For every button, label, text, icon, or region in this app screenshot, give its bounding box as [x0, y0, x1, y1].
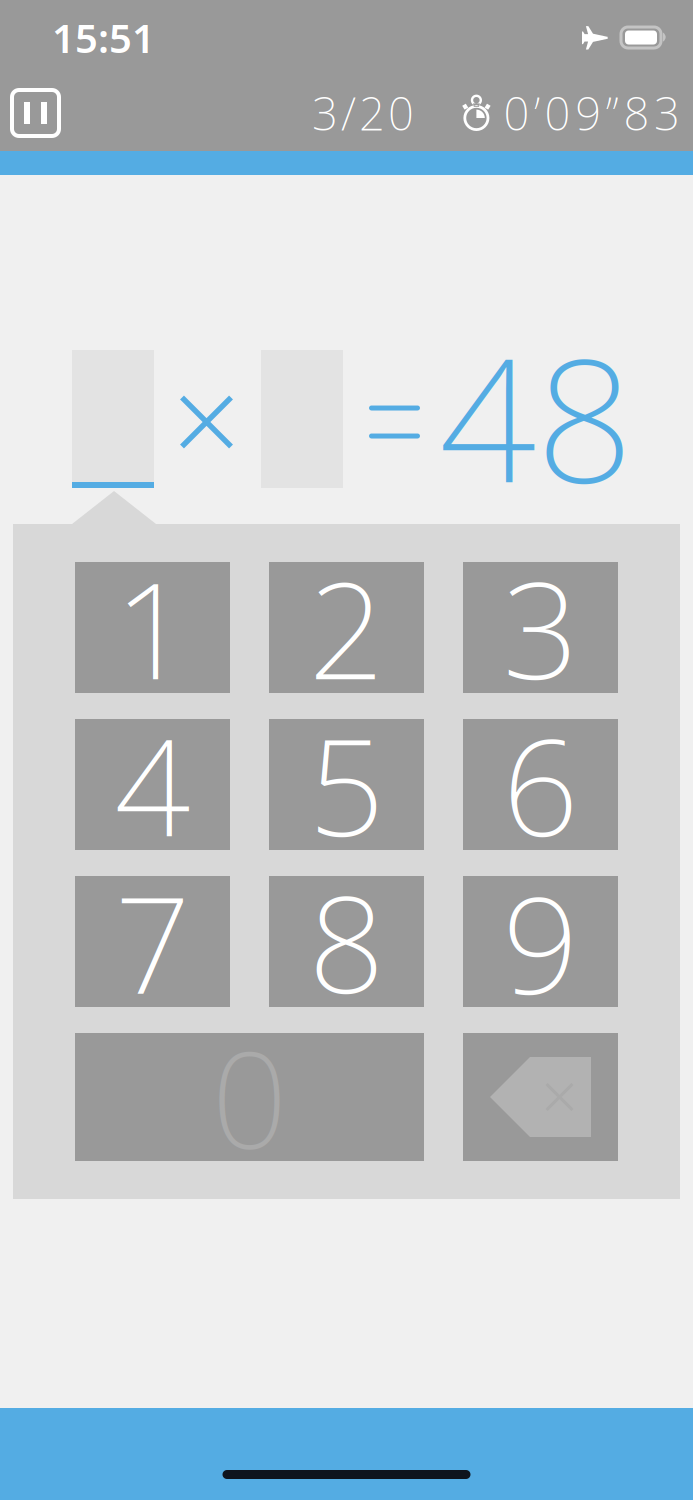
button[interactable]: 2	[269, 562, 424, 693]
staticText: 15:51	[52, 11, 155, 64]
button[interactable]: 5	[269, 719, 424, 850]
staticText: 0’09”83	[503, 83, 680, 143]
staticText: 5	[308, 696, 384, 873]
staticText: 48	[439, 303, 633, 529]
button[interactable]: Delete	[463, 1033, 618, 1161]
button[interactable]: 7	[75, 876, 230, 1007]
staticText: 0	[211, 1008, 287, 1186]
button[interactable]: 1	[75, 562, 230, 693]
staticText: 4	[114, 696, 190, 873]
staticText: 3	[502, 539, 578, 716]
staticText: 6	[502, 696, 578, 873]
button[interactable]: Pause	[12, 90, 59, 136]
staticText: 9	[502, 853, 578, 1030]
staticText: 8	[308, 853, 384, 1030]
button[interactable]: 8	[269, 876, 424, 1007]
button[interactable]: 4	[75, 719, 230, 850]
staticText: 3/20	[312, 83, 414, 143]
button[interactable]: 9	[463, 876, 618, 1007]
button[interactable]: 6	[463, 719, 618, 850]
staticText: 7	[114, 853, 190, 1030]
staticText: 1	[114, 539, 190, 716]
button[interactable]: First factor	[72, 353, 154, 491]
button[interactable]: 3	[463, 562, 618, 693]
staticText: 2	[308, 539, 384, 716]
